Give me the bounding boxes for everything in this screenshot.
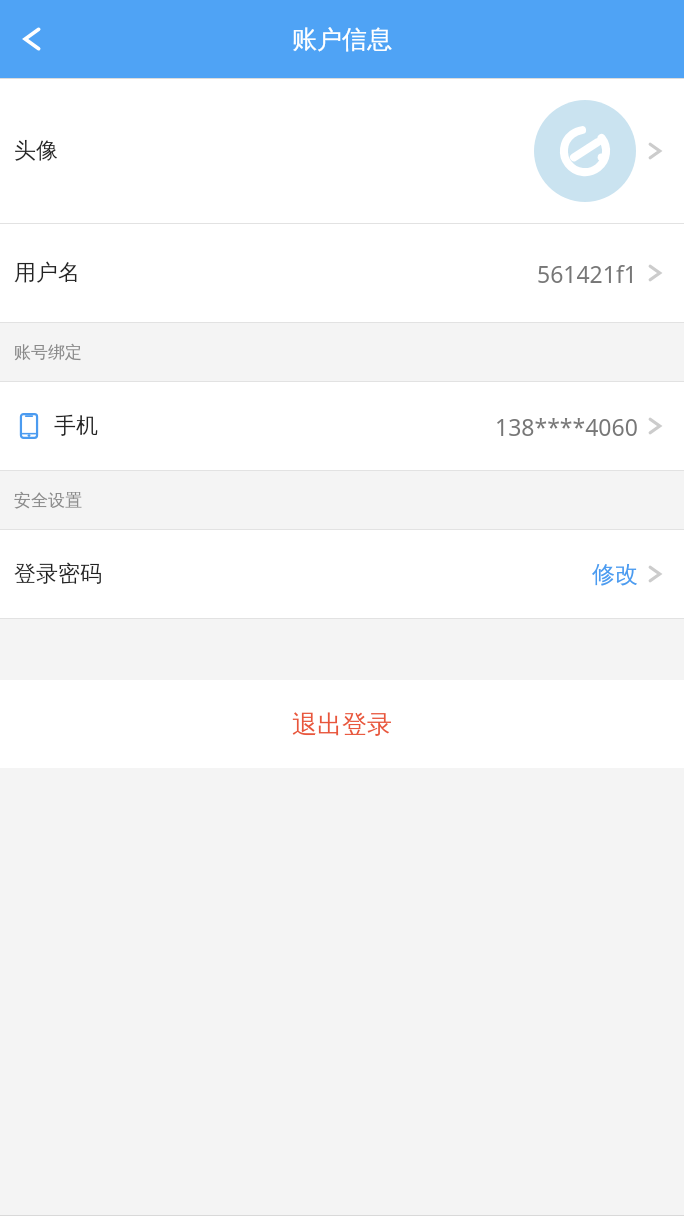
staticText: 退出登录	[292, 709, 392, 740]
staticText: 头像	[14, 137, 58, 165]
staticText: 138****4060	[495, 411, 638, 442]
button[interactable]: 头像	[0, 79, 684, 223]
button[interactable]: 退出登录	[0, 680, 684, 768]
staticText: 561421f1	[537, 258, 638, 289]
staticText: 修改	[592, 560, 638, 589]
staticText: 手机	[54, 412, 98, 440]
staticText: 登录密码	[14, 560, 102, 588]
staticText: 用户名	[14, 259, 80, 287]
staticText: 账号绑定	[14, 342, 82, 363]
button[interactable]: 手机	[0, 382, 684, 470]
staticText: 账户信息	[292, 24, 392, 55]
button[interactable]: 用户名	[0, 224, 684, 322]
button[interactable]: 登录密码	[0, 530, 684, 618]
staticText: 安全设置	[14, 490, 82, 511]
button[interactable]: Back	[6, 13, 58, 65]
